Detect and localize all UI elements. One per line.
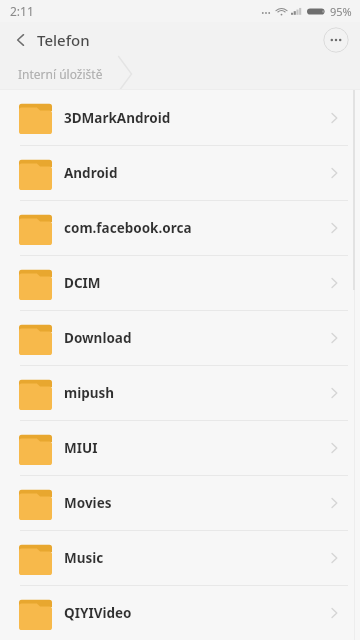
staticText: Download xyxy=(64,329,327,347)
staticText: DCIM xyxy=(64,274,327,292)
button[interactable]: More options xyxy=(323,27,349,53)
staticText: Android xyxy=(64,164,327,182)
staticText: QIYIVideo xyxy=(64,604,327,622)
button[interactable]: Download xyxy=(0,311,360,365)
staticText: com.facebook.orca xyxy=(64,219,327,237)
button[interactable]: DCIM xyxy=(0,256,360,310)
staticText: Telefon xyxy=(37,30,90,50)
staticText: 2:11 xyxy=(10,3,34,19)
staticText: 95% xyxy=(330,4,352,19)
staticText: 3DMarkAndroid xyxy=(64,109,327,127)
staticText: Music xyxy=(64,549,327,567)
button[interactable]: Android xyxy=(0,146,360,200)
staticText: Movies xyxy=(64,494,327,512)
button[interactable]: QIYIVideo xyxy=(0,586,360,640)
staticText: Interní úložiště xyxy=(18,66,103,82)
button[interactable]: Music xyxy=(0,531,360,585)
button[interactable]: com.facebook.orca xyxy=(0,201,360,255)
button[interactable]: mipush xyxy=(0,366,360,420)
button[interactable]: MIUI xyxy=(0,421,360,475)
button[interactable]: Movies xyxy=(0,476,360,530)
staticText: mipush xyxy=(64,384,327,402)
button[interactable]: Back xyxy=(0,26,102,54)
button[interactable]: Interní úložiště xyxy=(0,58,133,90)
button[interactable]: 3DMarkAndroid xyxy=(0,90,360,145)
staticText: MIUI xyxy=(64,439,327,457)
other: Back xyxy=(14,33,28,47)
